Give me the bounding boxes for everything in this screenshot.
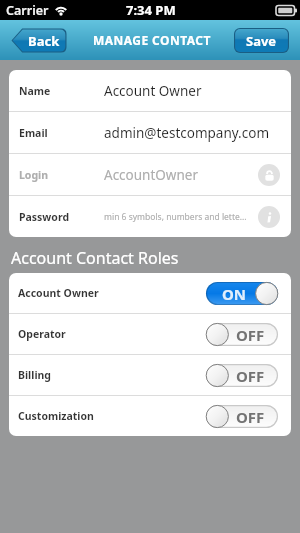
staticText: Login [19, 168, 104, 182]
staticText: Password [19, 210, 104, 224]
button[interactable]: Operator [9, 314, 291, 354]
staticText: Operator [18, 327, 206, 341]
button[interactable]: Locked [258, 164, 280, 186]
button[interactable]: Email [9, 112, 291, 153]
staticText: Account Owner [18, 286, 206, 300]
button[interactable]: Billing [9, 355, 291, 395]
staticText: Account Owner [104, 82, 280, 100]
staticText: OFF [236, 407, 265, 427]
staticText: min 6 symbols, numbers and lette... [104, 211, 258, 223]
staticText: Back [28, 32, 60, 50]
button[interactable]: Customization [9, 396, 291, 436]
button[interactable]: Switch on [206, 282, 278, 305]
staticText: OFF [236, 325, 265, 345]
staticText: Carrier [6, 2, 49, 19]
staticText: 7:34 PM [126, 1, 176, 19]
button[interactable]: Password [9, 196, 291, 237]
staticText: Account Contact Roles [11, 247, 179, 269]
button[interactable]: Switch off [206, 405, 278, 428]
button[interactable]: Switch off [206, 323, 278, 346]
button[interactable]: Name [9, 70, 291, 111]
button[interactable]: Account Owner [9, 273, 291, 313]
button[interactable]: Info [258, 206, 280, 228]
button[interactable]: Save [234, 28, 289, 53]
staticText: ON [222, 284, 247, 304]
staticText: MANAGE CONTACT [93, 32, 211, 48]
staticText: Billing [18, 368, 206, 382]
staticText: AccountOwner [104, 166, 258, 184]
button[interactable]: Switch off [206, 364, 278, 387]
staticText: Customization [18, 409, 206, 423]
button[interactable]: Back [11, 28, 67, 53]
staticText: Email [19, 126, 104, 140]
staticText: Name [19, 84, 104, 98]
staticText: OFF [236, 366, 265, 386]
button[interactable]: Login [9, 154, 291, 195]
staticText: Save [246, 32, 277, 50]
staticText: admin@testcompany.com [104, 124, 280, 142]
